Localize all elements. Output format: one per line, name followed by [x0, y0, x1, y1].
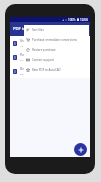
staticText: Floor plan A1	[20, 53, 38, 57]
staticText: Rate PDF to AutoCAD	[32, 68, 61, 72]
staticText: Contact support	[32, 58, 54, 62]
button[interactable]: Restore purchase	[24, 45, 89, 55]
staticText: PDF to AutoCAD	[13, 26, 46, 32]
button[interactable]: Floor plan A1	[10, 50, 90, 64]
button[interactable]: New conversion	[74, 143, 87, 156]
staticText: Elevation north	[20, 67, 41, 71]
button[interactable]: Site plan rev B	[10, 36, 90, 50]
button[interactable]: Rate PDF to AutoCAD	[24, 65, 89, 75]
staticText: 1.2 MB	[20, 44, 28, 47]
button[interactable]: Contact support	[24, 55, 89, 65]
staticText: Sort files	[32, 28, 44, 32]
staticText: 100%	[68, 18, 76, 22]
staticText: Site plan rev B	[20, 39, 40, 43]
staticText: 2.4 MB	[20, 58, 28, 61]
staticText: Purchase immediate conversions	[32, 38, 77, 42]
button[interactable]: Purchase immediate conversions	[24, 35, 89, 45]
staticText: 0.9 MB	[20, 72, 28, 75]
button[interactable]: Elevation north	[10, 64, 90, 78]
button[interactable]: Sort files	[24, 25, 89, 35]
staticText: 12:56	[80, 18, 88, 22]
staticText: Restore purchase	[32, 48, 56, 52]
